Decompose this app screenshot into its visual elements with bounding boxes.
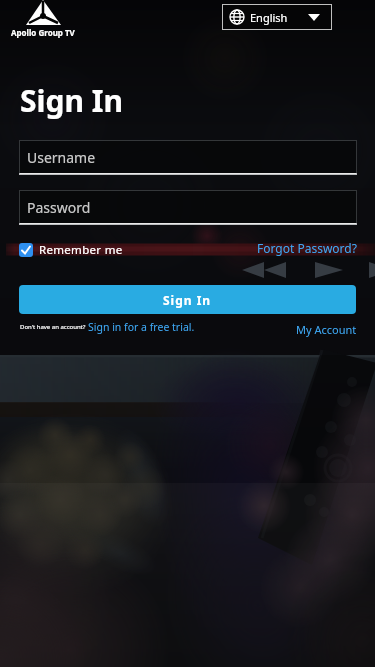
staticText: My Account xyxy=(296,322,357,337)
staticText: Password xyxy=(27,198,91,217)
staticText: Sign In xyxy=(163,292,212,308)
staticText: Sign in for a free trial. xyxy=(88,320,195,334)
button[interactable]: Forgot Password? xyxy=(257,240,357,256)
button[interactable]: My Account xyxy=(296,322,357,337)
button[interactable]: Apollo Group TV xyxy=(8,0,78,44)
staticText: Forgot Password? xyxy=(257,240,357,256)
button[interactable]: English xyxy=(222,4,332,30)
button[interactable]: Sign in for a free trial. xyxy=(88,320,195,334)
staticText: Apollo Group TV xyxy=(11,27,75,38)
staticText: Username xyxy=(27,148,96,167)
staticText: English xyxy=(250,10,288,25)
button[interactable]: Sign In xyxy=(19,285,356,314)
button[interactable]: Username xyxy=(19,140,357,175)
button[interactable]: Password xyxy=(19,190,357,225)
staticText: Sign In xyxy=(20,80,123,121)
staticText: Don't have an account? xyxy=(20,323,86,331)
staticText: Remember me xyxy=(39,242,123,258)
button[interactable]: Remember me xyxy=(19,242,123,258)
